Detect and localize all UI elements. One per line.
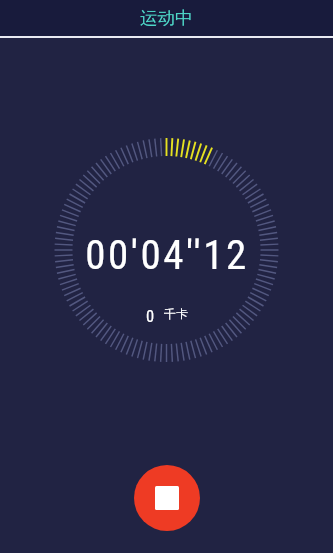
staticText: 00'04''12 bbox=[85, 231, 249, 279]
staticText: 千卡 bbox=[164, 306, 188, 321]
button[interactable]: Stop workout bbox=[134, 465, 200, 531]
staticText: 0 bbox=[146, 307, 155, 326]
staticText: 运动中 bbox=[140, 7, 193, 29]
